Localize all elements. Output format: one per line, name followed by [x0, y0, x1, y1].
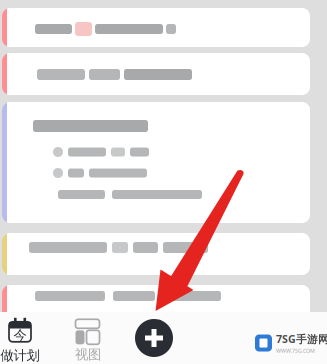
- button[interactable]: [2, 8, 310, 47]
- staticText: 做计划: [0, 347, 39, 364]
- button[interactable]: [2, 285, 310, 325]
- staticText: 视图: [75, 346, 101, 363]
- button[interactable]: 今: [0, 318, 46, 364]
- staticText: 7SG手游网: [276, 332, 327, 346]
- button[interactable]: [2, 53, 310, 95]
- staticText: WWW.7SG.COM: [276, 347, 315, 354]
- button[interactable]: 视图: [62, 317, 114, 364]
- staticText: 今: [13, 327, 26, 343]
- button[interactable]: [2, 233, 310, 275]
- button[interactable]: [2, 102, 310, 223]
- button[interactable]: 新建任务: [135, 319, 173, 357]
